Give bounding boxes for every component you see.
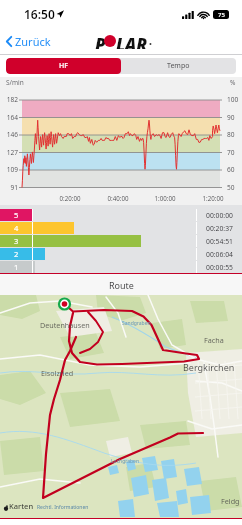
staticText: 1:20:00: [195, 194, 231, 202]
staticText: 182: [0, 95, 18, 104]
staticText: 00:00:00: [206, 211, 233, 220]
button[interactable]: HF: [6, 58, 121, 74]
staticText: Deutenhausen: [40, 320, 90, 330]
staticText: 60: [227, 165, 242, 174]
staticText: 16:50: [24, 6, 55, 22]
staticText: 4: [14, 223, 19, 233]
staticText: 90: [227, 113, 242, 122]
staticText: 2: [14, 249, 19, 259]
button[interactable]: 2: [0, 248, 242, 260]
button[interactable]: 1: [0, 261, 242, 273]
staticText: HF: [59, 61, 68, 71]
staticText: 80: [227, 130, 242, 139]
staticText: Rechtl. Informationen: [37, 504, 89, 511]
staticText: Bergkirchen: [183, 361, 235, 373]
staticText: 109: [0, 165, 18, 174]
button[interactable]: Tempo: [121, 58, 236, 74]
button[interactable]: Polar: [88, 33, 160, 49]
staticText: 1:00:00: [147, 194, 183, 202]
staticText: 70: [227, 148, 242, 157]
staticText: Zurück: [15, 34, 51, 49]
staticText: 146: [0, 130, 18, 139]
staticText: LAR: [116, 33, 148, 49]
staticText: 75: [218, 11, 225, 19]
staticText: Lochgraben: [111, 458, 139, 465]
staticText: %: [230, 78, 236, 87]
staticText: 00:00:55: [206, 263, 233, 272]
staticText: 5: [14, 210, 19, 220]
staticText: 00:54:51: [206, 237, 233, 246]
staticText: Karten: [9, 501, 34, 511]
staticText: 91: [0, 183, 18, 192]
button[interactable]: Deutenhausen: [0, 295, 242, 518]
button[interactable]: 3: [0, 235, 242, 247]
staticText: 0:40:00: [100, 194, 136, 202]
button[interactable]: 4: [0, 222, 242, 234]
staticText: Route: [109, 279, 134, 291]
staticText: 50: [227, 183, 242, 192]
button[interactable]: Zurück: [4, 31, 53, 52]
staticText: Facha: [204, 335, 224, 345]
staticText: 00:06:04: [206, 250, 233, 259]
staticText: 164: [0, 113, 18, 122]
staticText: Eisolzried: [41, 368, 74, 378]
staticText: 00:20:37: [206, 224, 233, 233]
staticText: .: [149, 34, 152, 48]
staticText: Sandgraben: [122, 320, 151, 327]
staticText: 1: [14, 262, 19, 272]
staticText: 0:20:00: [52, 194, 88, 202]
staticText: Tempo: [167, 61, 190, 71]
staticText: Feldg: [221, 496, 240, 506]
staticText: 100: [227, 95, 242, 104]
staticText: 127: [0, 148, 18, 157]
staticText: 3: [14, 236, 19, 246]
button[interactable]: 5: [0, 209, 242, 221]
staticText: S/min: [6, 78, 24, 87]
staticText: P: [95, 33, 106, 49]
